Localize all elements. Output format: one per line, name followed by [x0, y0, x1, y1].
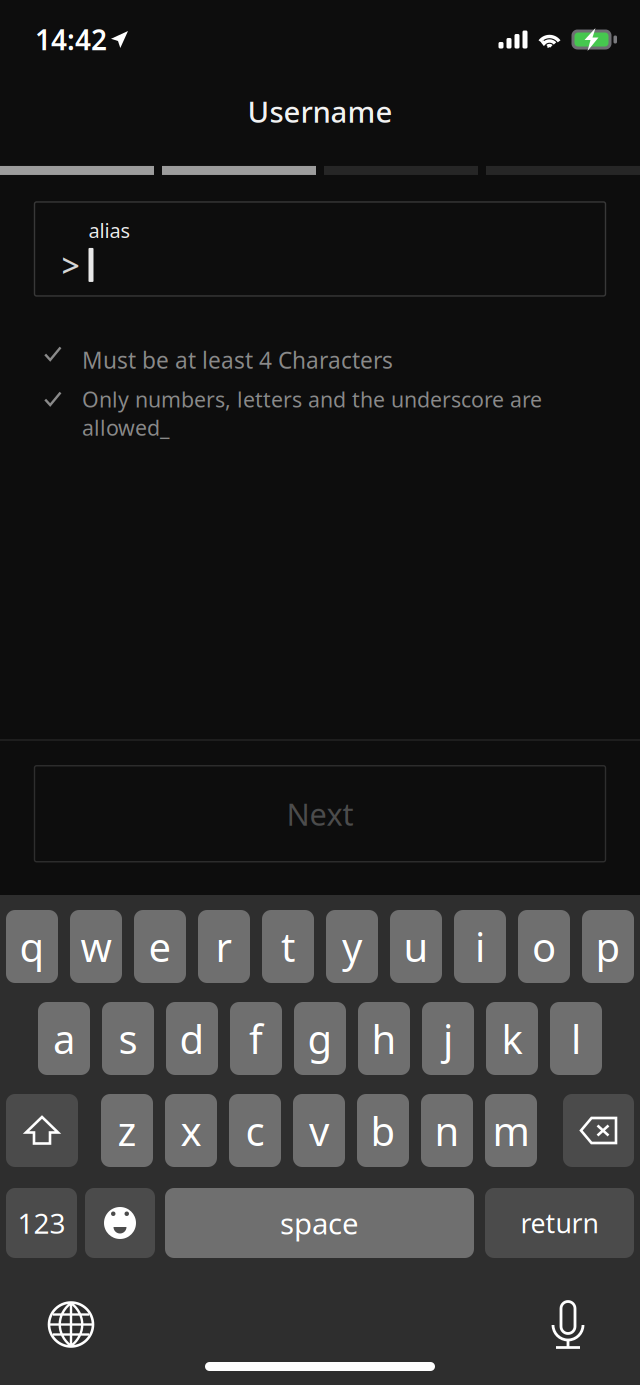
staticText: w [80, 920, 111, 973]
staticText: h [371, 1012, 396, 1065]
button[interactable]: s [102, 1002, 154, 1075]
staticText: x [180, 1104, 201, 1157]
button[interactable]: h [358, 1002, 410, 1075]
button[interactable]: u [390, 910, 442, 983]
button[interactable]: p [582, 910, 634, 983]
button[interactable]: d [166, 1002, 218, 1075]
button[interactable]: Delete [563, 1094, 634, 1167]
staticText: space [280, 1203, 359, 1242]
staticText: c [245, 1104, 264, 1157]
staticText: a [53, 1012, 75, 1065]
button[interactable]: j [422, 1002, 474, 1075]
staticText: l [571, 1012, 581, 1065]
button[interactable]: g [294, 1002, 346, 1075]
button[interactable]: return [485, 1188, 634, 1258]
button[interactable]: q [6, 910, 58, 983]
staticText: g [307, 1012, 332, 1065]
staticText: i [475, 920, 485, 973]
staticText: j [443, 1012, 453, 1065]
staticText: u [403, 920, 428, 973]
button[interactable]: Next [34, 766, 605, 862]
staticText: o [532, 920, 556, 973]
staticText: Only numbers, letters and the underscore… [82, 385, 542, 442]
button[interactable]: n [421, 1094, 473, 1167]
staticText: m [492, 1104, 529, 1157]
staticText: f [249, 1012, 263, 1065]
staticText: Must be at least 4 Characters [82, 345, 393, 375]
staticText: return [520, 1205, 598, 1241]
staticText: n [434, 1104, 459, 1157]
button[interactable]: b [357, 1094, 409, 1167]
button[interactable]: a [38, 1002, 90, 1075]
button[interactable]: y [326, 910, 378, 983]
button[interactable]: l [550, 1002, 602, 1075]
button[interactable]: v [293, 1094, 345, 1167]
button[interactable]: m [485, 1094, 537, 1167]
staticText: y [342, 920, 362, 973]
button[interactable]: c [229, 1094, 281, 1167]
button[interactable]: Dictate [550, 1300, 586, 1349]
staticText: Next [286, 793, 353, 834]
button[interactable]: Emoji [85, 1188, 155, 1258]
staticText: p [595, 920, 620, 973]
button[interactable]: Shift [6, 1094, 78, 1167]
staticText: s [118, 1012, 137, 1065]
staticText: > [61, 244, 79, 286]
button[interactable]: 123 [6, 1188, 77, 1258]
button[interactable]: t [262, 910, 314, 983]
staticText: b [370, 1104, 395, 1157]
staticText: e [148, 920, 171, 973]
button[interactable]: Next keyboard [47, 1301, 95, 1348]
button[interactable]: o [518, 910, 570, 983]
staticText: 123 [17, 1204, 65, 1242]
button[interactable]: k [486, 1002, 538, 1075]
button[interactable]: x [165, 1094, 217, 1167]
staticText: Username [247, 92, 392, 131]
staticText: t [281, 920, 295, 973]
button[interactable]: i [454, 910, 506, 983]
button[interactable]: e [134, 910, 186, 983]
staticText: d [179, 1012, 204, 1065]
button[interactable]: f [230, 1002, 282, 1075]
staticText: r [215, 920, 232, 973]
staticText: z [117, 1104, 136, 1157]
staticText: v [309, 1104, 329, 1157]
staticText: 14:42 [35, 21, 107, 58]
staticText: alias [88, 217, 130, 244]
button[interactable]: space [165, 1188, 474, 1258]
button[interactable]: w [70, 910, 122, 983]
button[interactable]: z [101, 1094, 153, 1167]
button[interactable]: r [198, 910, 250, 983]
staticText: q [19, 920, 44, 973]
staticText: k [501, 1012, 522, 1065]
